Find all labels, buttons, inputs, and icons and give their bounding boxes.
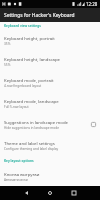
button[interactable]: Back bbox=[14, 186, 38, 200]
staticText: Кнопка выгрузки bbox=[4, 171, 40, 177]
staticText: 35% bbox=[4, 42, 11, 46]
staticText: Keyboard height, landscape bbox=[4, 56, 61, 62]
button[interactable]: Keyboard height, landscape bbox=[0, 51, 100, 72]
staticText: Theme and label settings bbox=[4, 140, 55, 146]
staticText: Keyboard mode, landscape bbox=[4, 98, 59, 104]
button[interactable]: Keyboard mode, landscape bbox=[0, 93, 100, 114]
button[interactable]: Кнопка выгрузки bbox=[0, 166, 100, 186]
staticText: Keyboard height, portrait bbox=[4, 35, 55, 41]
staticText: Configure theming and label display bbox=[4, 147, 59, 151]
button[interactable]: Recent apps bbox=[62, 186, 86, 200]
button[interactable]: Keyboard mode, portrait bbox=[0, 72, 100, 93]
staticText: Keyboard mode, portrait bbox=[4, 77, 54, 83]
staticText: Автоматически bbox=[4, 178, 28, 182]
button[interactable]: Home bbox=[38, 186, 62, 200]
staticText: Keyboard view settings bbox=[4, 24, 41, 28]
staticText: 12:28 bbox=[86, 1, 98, 7]
staticText: Full 5-row layout bbox=[4, 105, 29, 109]
staticText: Hide suggestions in landscape mode bbox=[4, 126, 59, 130]
staticText: Suggestions in landscape mode bbox=[4, 119, 68, 125]
staticText: 55% bbox=[4, 63, 11, 67]
staticText: Key layout options bbox=[4, 159, 34, 163]
button[interactable]: Suggestions in landscape mode bbox=[0, 114, 100, 135]
button[interactable]: Keyboard height, portrait bbox=[0, 30, 100, 51]
staticText: 4-row fingerboard layout bbox=[4, 84, 42, 88]
staticText: Settings for Hacker's Keyboard bbox=[4, 12, 75, 19]
button[interactable]: Theme and label settings bbox=[0, 135, 100, 156]
